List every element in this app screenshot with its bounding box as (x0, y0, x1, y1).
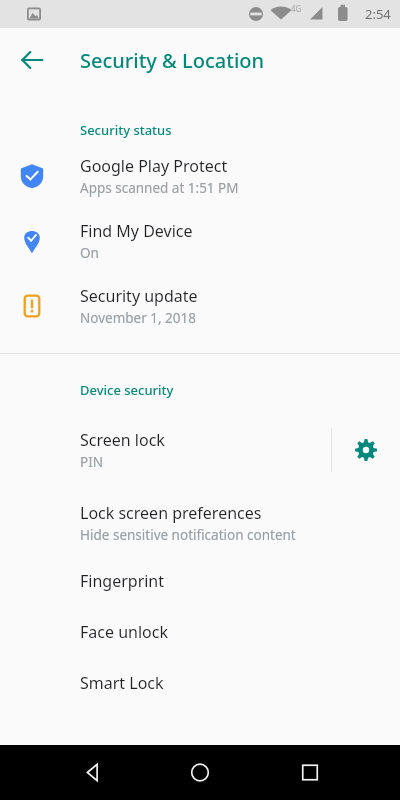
staticText: Security & Location (80, 47, 265, 74)
staticText: Smart Lock (80, 672, 164, 694)
staticText: On (80, 244, 99, 262)
button[interactable]: Google Play Protect (0, 155, 400, 197)
button[interactable]: Face unlock (0, 621, 400, 643)
button[interactable]: Fingerprint (0, 570, 400, 592)
button[interactable]: Screen lock settings (332, 416, 400, 484)
staticText: Hide sensitive notification content (80, 526, 296, 544)
staticText: Find My Device (80, 220, 193, 242)
button[interactable]: Lock screen preferences (0, 502, 400, 544)
staticText: Google Play Protect (80, 155, 228, 177)
button[interactable]: Back (8, 36, 56, 84)
staticText: Device security (80, 381, 174, 399)
staticText: PIN (80, 453, 104, 471)
staticText: Face unlock (80, 621, 168, 643)
staticText: Security status (80, 121, 172, 139)
staticText: 4G (291, 3, 302, 14)
staticText: 2:54 (365, 5, 391, 23)
button[interactable]: Smart Lock (0, 672, 400, 694)
staticText: Lock screen preferences (80, 502, 262, 524)
staticText: Security update (80, 285, 198, 307)
button[interactable]: Screen lock (0, 429, 331, 471)
staticText: Screen lock (80, 429, 165, 451)
staticText: Fingerprint (80, 570, 165, 592)
button[interactable]: Security update (0, 285, 400, 327)
button[interactable]: Find My Device (0, 220, 400, 262)
staticText: November 1, 2018 (80, 309, 196, 327)
staticText: Apps scanned at 1:51 PM (80, 179, 239, 197)
